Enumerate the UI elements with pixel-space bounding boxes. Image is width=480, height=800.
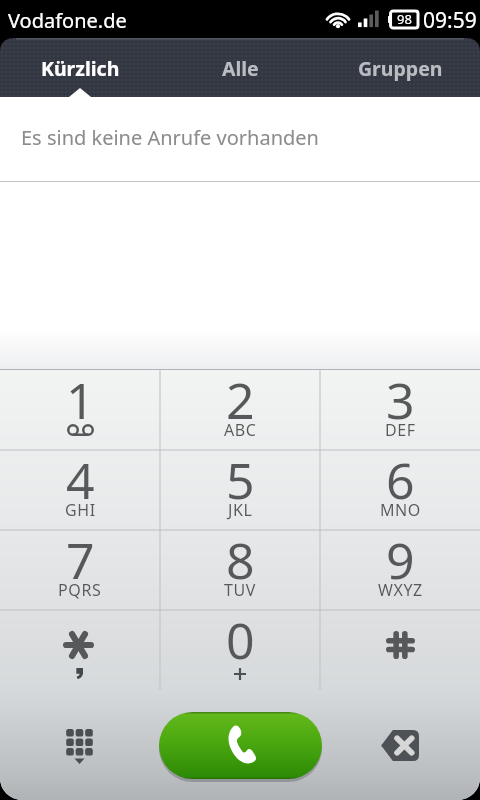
button[interactable]: 5 xyxy=(160,450,320,530)
staticText: 3 xyxy=(386,366,415,434)
staticText: 2 xyxy=(226,366,255,434)
button[interactable]: Call xyxy=(159,712,322,779)
staticText: Gruppen xyxy=(358,55,443,82)
staticText: ABC xyxy=(224,419,257,441)
button[interactable]: Alle xyxy=(160,38,320,97)
button[interactable]: 1 xyxy=(0,370,160,450)
button[interactable]: Backspace xyxy=(371,722,427,768)
staticText: Vodafone.de xyxy=(8,7,127,34)
staticText: Alle xyxy=(222,55,259,82)
staticText: 8 xyxy=(226,526,255,594)
button[interactable]: 2 xyxy=(160,370,320,450)
staticText: 5 xyxy=(226,446,255,514)
staticText: GHI xyxy=(65,499,96,521)
button[interactable]: 3 xyxy=(320,370,480,450)
button[interactable] xyxy=(0,610,160,690)
staticText: 9 xyxy=(386,526,415,594)
staticText: PQRS xyxy=(58,579,102,601)
staticText: WXYZ xyxy=(378,579,423,601)
button[interactable]: Show keypad xyxy=(55,729,103,769)
staticText: Es sind keine Anrufe vorhanden xyxy=(21,124,319,151)
button[interactable]: 4 xyxy=(0,450,160,530)
button[interactable] xyxy=(320,610,480,690)
staticText: TUV xyxy=(224,579,256,601)
staticText: JKL xyxy=(228,499,253,521)
staticText: 98 xyxy=(397,10,412,27)
staticText: 4 xyxy=(66,446,95,514)
button[interactable]: 8 xyxy=(160,530,320,610)
button[interactable]: Kürzlich xyxy=(0,38,160,97)
staticText: 09:59 xyxy=(423,6,477,35)
button[interactable]: Gruppen xyxy=(320,38,480,97)
staticText: 7 xyxy=(66,526,95,594)
staticText: DEF xyxy=(385,419,416,441)
staticText: 0 xyxy=(226,606,255,674)
staticText: MNO xyxy=(380,499,421,521)
staticText: 1 xyxy=(66,366,95,434)
button[interactable]: 7 xyxy=(0,530,160,610)
staticText: Kürzlich xyxy=(41,55,120,82)
button[interactable]: 0 xyxy=(160,610,320,690)
button[interactable]: 9 xyxy=(320,530,480,610)
staticText: 6 xyxy=(386,446,415,514)
button[interactable]: 6 xyxy=(320,450,480,530)
